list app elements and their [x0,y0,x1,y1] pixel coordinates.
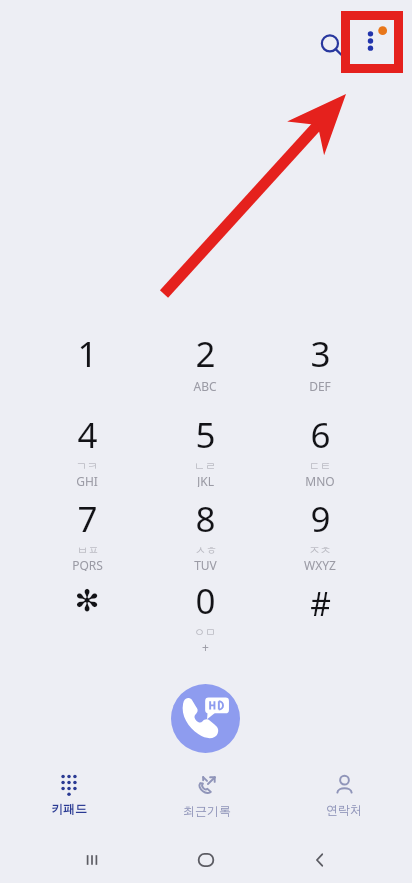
button[interactable]: 9 [266,491,374,571]
staticText: ㄷㅌ [309,459,331,473]
button[interactable]: ✻ [33,573,141,653]
staticText: 1 [77,330,98,378]
staticText: DEF [309,378,331,394]
button[interactable]: Home [166,836,246,883]
staticText: ㅈㅊ [309,543,331,557]
staticText: ㅇㅁ [194,625,216,639]
staticText: 5 [195,411,216,459]
staticText: ABC [193,378,217,394]
staticText: GHI [76,473,98,487]
staticText: ㄱㅋ [76,459,98,473]
button[interactable]: 7 [33,491,141,571]
button[interactable]: 8 [151,491,259,571]
button[interactable]: Search [310,24,354,68]
button[interactable]: Back [280,836,360,883]
button[interactable]: 최근기록 [138,766,275,828]
staticText: 최근기록 [183,803,231,818]
staticText: 9 [310,495,331,543]
staticText: TUV [194,557,217,571]
staticText: PQRS [72,557,103,571]
button[interactable]: More options [352,20,394,62]
button[interactable]: 키패드 [0,766,138,828]
staticText: 7 [77,495,98,543]
staticText: JKL [197,473,214,487]
staticText: # [310,582,331,626]
staticText: + [202,639,209,653]
staticText: ㄴㄹ [194,459,216,473]
staticText: ㅂㅍ [77,543,99,557]
staticText: ㅅㅎ [195,543,217,557]
button[interactable]: 연락처 [275,766,412,828]
staticText: 0 [195,577,216,625]
staticText: 3 [310,330,331,378]
staticText: 2 [195,330,216,378]
button[interactable]: # [266,573,374,653]
staticText: MNO [305,473,335,487]
staticText: ✻ [74,583,100,618]
button[interactable]: Call [171,684,240,753]
button[interactable]: 2 [151,326,259,406]
staticText: WXYZ [304,557,336,571]
button[interactable]: Recents [52,836,132,883]
staticText: 키패드 [51,801,87,816]
button[interactable]: 5 [151,407,259,487]
button[interactable]: 0 [151,573,259,653]
button[interactable]: 4 [33,407,141,487]
staticText: 6 [310,411,331,459]
staticText: 연락처 [326,802,362,817]
staticText: 4 [77,411,98,459]
button[interactable]: 1 [33,326,141,406]
staticText: 8 [195,495,216,543]
button[interactable]: 6 [266,407,374,487]
button[interactable]: 3 [266,326,374,406]
